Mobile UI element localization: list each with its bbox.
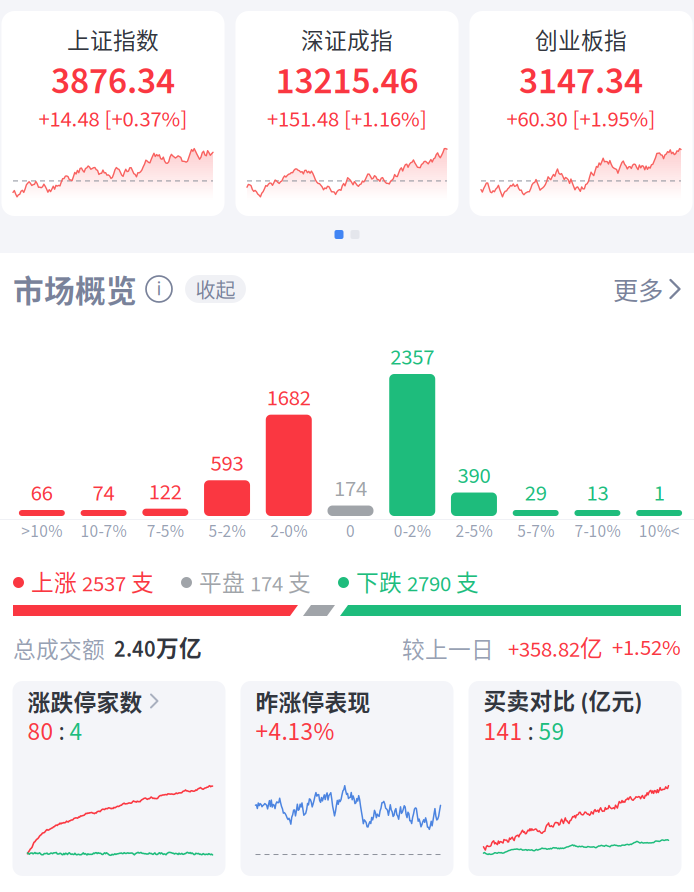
- staticText: 1: [654, 477, 665, 510]
- staticText: >10%: [21, 519, 62, 544]
- staticText: +151.48 [+1.16%]: [267, 103, 427, 136]
- staticText: 深证成指: [301, 23, 393, 55]
- button[interactable]: 收起: [172, 275, 246, 303]
- staticText: 593: [210, 448, 243, 480]
- staticText: 74: [93, 477, 115, 510]
- button[interactable]: 涨跌停家数: [12, 681, 225, 876]
- staticText: 较上一日: [402, 632, 494, 664]
- staticText: 0-2%: [394, 519, 431, 544]
- staticText: 2.40万亿: [114, 630, 202, 666]
- staticText: 3876.34: [51, 55, 175, 108]
- button[interactable]: 深证成指: [235, 11, 458, 216]
- staticText: 1682: [267, 382, 311, 414]
- staticText: 2-5%: [455, 519, 492, 544]
- staticText: 5-7%: [517, 519, 554, 544]
- staticText: +358.82亿: [508, 630, 603, 666]
- button[interactable]: 昨涨停表现: [240, 681, 453, 876]
- staticText: :: [522, 714, 538, 750]
- staticText: 2-0%: [270, 519, 307, 544]
- staticText: +4.13%: [255, 714, 334, 750]
- staticText: 29: [525, 477, 547, 510]
- button[interactable]: 上证指数: [1, 11, 224, 216]
- staticText: +1.52%: [612, 632, 681, 664]
- staticText: 下跌 2790 支: [356, 565, 479, 600]
- staticText: 上证指数: [67, 23, 159, 55]
- staticText: 80: [27, 714, 53, 750]
- staticText: 5-2%: [208, 519, 245, 544]
- staticText: 昨涨停表现: [255, 685, 370, 717]
- staticText: 10-7%: [81, 519, 127, 544]
- staticText: 更多: [613, 271, 663, 307]
- staticText: 59: [538, 714, 564, 750]
- staticText: 创业板指: [535, 23, 627, 55]
- staticText: 市场概览: [13, 267, 137, 311]
- staticText: 0: [346, 519, 355, 544]
- staticText: 66: [31, 477, 53, 510]
- staticText: 7-5%: [147, 519, 184, 544]
- staticText: 13215.46: [275, 55, 418, 108]
- staticText: 7-10%: [574, 519, 620, 544]
- staticText: 122: [149, 476, 182, 508]
- staticText: 13: [586, 477, 608, 510]
- button[interactable]: 说明: [137, 276, 172, 302]
- staticText: 10%<: [639, 519, 680, 544]
- button[interactable]: 创业板指: [469, 11, 692, 216]
- staticText: 390: [457, 460, 490, 492]
- staticText: 174: [334, 473, 367, 505]
- staticText: 平盘 174 支: [199, 565, 311, 600]
- staticText: 上涨 2537 支: [31, 565, 154, 600]
- staticText: 141: [483, 714, 522, 750]
- staticText: 涨跌停家数: [27, 685, 142, 717]
- staticText: 收起: [195, 274, 235, 303]
- staticText: 总成交额: [13, 632, 105, 664]
- button[interactable]: 更多: [613, 271, 681, 307]
- staticText: 2357: [390, 341, 434, 374]
- staticText: i: [156, 275, 161, 303]
- staticText: +14.48 [+0.37%]: [38, 103, 187, 136]
- staticText: 4: [69, 714, 82, 750]
- button[interactable]: 买卖对比 (亿元): [468, 681, 681, 876]
- staticText: 买卖对比 (亿元): [483, 683, 642, 719]
- staticText: +60.30 [+1.95%]: [506, 103, 655, 136]
- staticText: :: [53, 714, 69, 750]
- staticText: 3147.34: [519, 55, 643, 108]
